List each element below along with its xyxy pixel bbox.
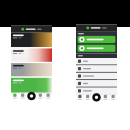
button[interactable]: Browse	[84, 95, 92, 100]
button[interactable]: Menu item	[76, 58, 117, 64]
button[interactable]: Featured story	[11, 48, 52, 62]
button[interactable]: Alerts	[36, 94, 44, 98]
button[interactable]: Featured story	[11, 63, 52, 77]
button[interactable]: Browse	[19, 94, 27, 98]
button[interactable]: Menu item	[76, 88, 117, 94]
button[interactable]: Create	[92, 93, 101, 101]
button[interactable]: Menu item	[76, 80, 117, 87]
button[interactable]: Menu item	[76, 73, 117, 79]
button[interactable]: Profile	[44, 94, 52, 98]
button[interactable]: Shortcut	[78, 36, 115, 43]
button[interactable]: Home	[11, 94, 19, 98]
button[interactable]: Menu item	[76, 65, 117, 72]
button[interactable]: Shortcut	[78, 45, 115, 52]
button[interactable]: Profile	[109, 95, 117, 100]
button[interactable]: Featured story	[11, 78, 52, 93]
button[interactable]: Home	[76, 95, 84, 100]
button[interactable]: Alerts	[101, 95, 109, 100]
button[interactable]: Create	[27, 92, 36, 100]
button[interactable]: Featured story	[11, 33, 52, 47]
